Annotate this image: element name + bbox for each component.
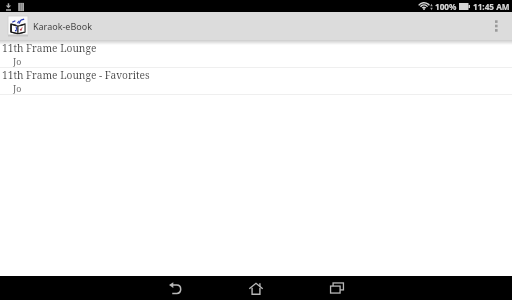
staticText: 11th Frame Lounge	[2, 41, 97, 55]
button[interactable]: 11th Frame Lounge	[0, 40, 512, 68]
button[interactable]: Karaok-eBook	[0, 12, 96, 40]
staticText: Jo	[13, 83, 22, 95]
button[interactable]: Home	[232, 276, 280, 300]
button[interactable]: 11th Frame Lounge - Favorites	[0, 67, 512, 95]
staticText: 100%	[435, 1, 457, 12]
staticText: Karaok-eBook	[33, 20, 92, 32]
button[interactable]: Recents	[313, 276, 361, 300]
staticText: Jo	[13, 56, 22, 68]
staticText: 11th Frame Lounge - Favorites	[2, 68, 150, 82]
staticText: 11:45 AM	[473, 1, 510, 12]
button[interactable]: Back	[151, 276, 199, 300]
button[interactable]: More options	[482, 12, 512, 40]
